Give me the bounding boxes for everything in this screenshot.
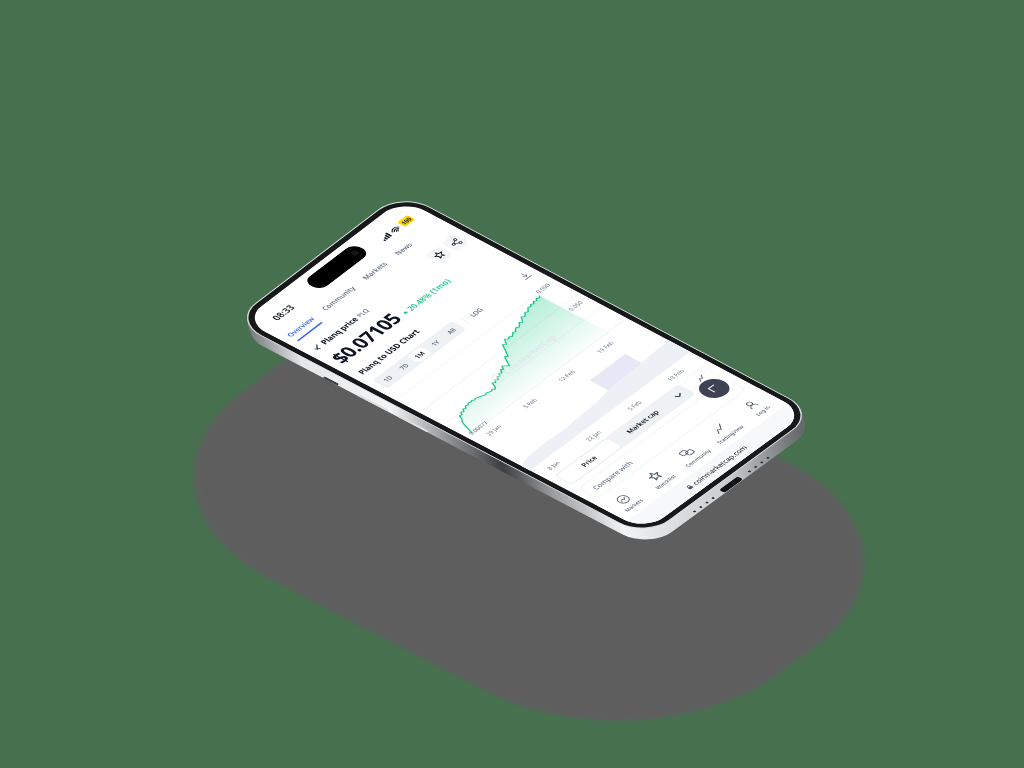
staticText: PLQ [354, 307, 371, 318]
button[interactable]: Community [312, 281, 364, 315]
button[interactable]: Watchlist [629, 459, 690, 498]
staticText: 22 Jan [583, 429, 604, 442]
staticText: 19 Feb [665, 368, 686, 382]
staticText: CoinMarketCap [499, 333, 559, 376]
staticText: 0.050 [566, 299, 585, 312]
button[interactable]: Chart type [681, 366, 721, 391]
staticText: News [392, 241, 415, 257]
staticText: 1D [381, 374, 395, 383]
button[interactable]: 1Y [422, 334, 448, 351]
button[interactable]: News [385, 238, 421, 260]
staticText: Watchlist [653, 473, 678, 490]
staticText: Price [578, 454, 600, 468]
staticText: 12 Feb [556, 368, 577, 383]
staticText: 29 Jan [483, 423, 504, 437]
staticText: $0.07105 [324, 309, 408, 367]
staticText: Planq price [317, 314, 363, 346]
button[interactable]: Download chart [515, 269, 535, 282]
staticText: Compare with [590, 459, 636, 491]
staticText: Community [683, 448, 713, 468]
staticText: Overview [284, 315, 317, 338]
button[interactable]: More options [660, 384, 696, 407]
staticText: All [444, 327, 458, 335]
button[interactable]: TradingView [693, 411, 755, 451]
staticText: 5 Feb [625, 399, 644, 412]
staticText: 0.090 [533, 282, 552, 295]
staticText: 08:33 [269, 303, 298, 322]
button[interactable]: Markets [597, 482, 658, 521]
staticText: Markets [622, 497, 645, 513]
staticText: Community [319, 285, 358, 312]
staticText: Log in [753, 404, 772, 417]
button[interactable]: Community [660, 435, 722, 475]
button[interactable]: 1M [406, 346, 433, 363]
staticText: 8 Jan [545, 459, 562, 471]
staticText: 0.00077 [466, 420, 490, 436]
button[interactable]: Price [556, 438, 622, 484]
staticText: coinmarketcap.com [690, 444, 750, 486]
staticText: 7D [397, 362, 411, 371]
button[interactable]: Share [441, 233, 470, 252]
button[interactable]: Expand chart [693, 375, 736, 402]
button[interactable]: Compare with [578, 378, 747, 499]
staticText: 1M [412, 350, 427, 360]
staticText: 1Y [428, 338, 442, 347]
button[interactable]: Market cap [609, 399, 676, 445]
button[interactable]: Markets [353, 257, 396, 285]
staticText: Markets [359, 260, 390, 281]
button[interactable]: 7D [391, 358, 417, 375]
button[interactable]: All [438, 322, 464, 339]
button[interactable]: Overview [278, 312, 324, 342]
staticText: TradingView [715, 424, 746, 445]
staticText: 5 Feb [520, 397, 539, 409]
staticText: 19 Feb [594, 340, 616, 354]
staticText: 100 [399, 216, 414, 226]
button[interactable]: 1D [374, 370, 401, 387]
staticText: LOG [467, 306, 485, 318]
staticText: Planq to USD Chart [355, 327, 422, 376]
button[interactable]: Log in [725, 387, 788, 427]
button[interactable]: Add to watchlist [425, 246, 453, 264]
staticText: Market cap [623, 409, 662, 435]
button[interactable]: LOG [467, 306, 485, 318]
staticText: 20.48% (1mo) [404, 277, 453, 312]
